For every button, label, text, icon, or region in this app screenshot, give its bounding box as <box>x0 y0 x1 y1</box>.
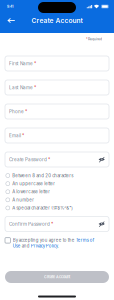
staticText: A lowercase letter <box>12 189 50 194</box>
staticText: Terms of <box>76 237 95 243</box>
staticText: Last Name <box>9 85 33 90</box>
staticText: * <box>50 221 53 227</box>
button[interactable]: Back <box>3 14 19 27</box>
button[interactable]: Confirm Password <box>5 216 109 231</box>
button[interactable]: By accepting you agree to the <box>5 237 109 249</box>
staticText: By accepting you agree to the <box>13 237 76 243</box>
staticText: Confirm Password <box>9 221 50 227</box>
staticText: * <box>21 133 24 138</box>
staticText: Between 8 and 20 characters <box>12 173 73 178</box>
staticText: Use <box>13 243 21 248</box>
button[interactable]: Create Password <box>5 152 109 167</box>
staticText: * <box>33 61 36 66</box>
button[interactable]: Last Name <box>5 80 109 95</box>
staticText: A number <box>12 197 34 202</box>
staticText: 9:41 <box>7 4 13 9</box>
staticText: * <box>86 37 88 41</box>
staticText: A special character (!#$%^&*) <box>12 205 73 210</box>
staticText: Create Account <box>31 16 82 25</box>
staticText: Required <box>88 37 102 41</box>
button[interactable]: Phone <box>5 104 109 119</box>
staticText: Email <box>9 133 21 138</box>
staticText: . <box>58 243 59 248</box>
staticText: First Name <box>9 61 33 66</box>
staticText: An uppercase letter <box>12 181 55 186</box>
staticText: Privacy Policy <box>31 243 58 248</box>
button[interactable]: First Name <box>5 56 109 71</box>
button[interactable]: Email <box>5 128 109 143</box>
staticText: Create Account <box>44 275 70 279</box>
staticText: * <box>47 157 50 162</box>
staticText: Create Password <box>9 157 47 162</box>
staticText: * <box>24 109 27 114</box>
staticText: and <box>21 243 31 248</box>
staticText: * <box>33 85 36 90</box>
button[interactable]: Create Account <box>5 271 109 283</box>
staticText: Phone <box>9 109 24 114</box>
